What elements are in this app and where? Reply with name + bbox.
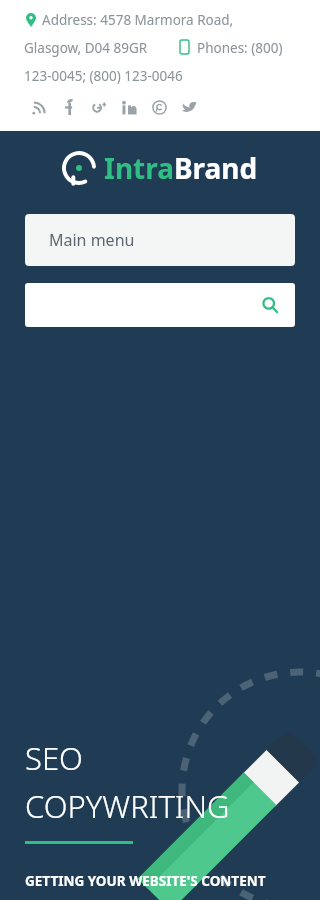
button[interactable]: Google Plus	[90, 98, 108, 116]
button[interactable]: Pinterest	[150, 98, 168, 116]
staticText: Address: 4578 Marmora Road,	[42, 11, 234, 29]
button[interactable]: Search	[259, 294, 281, 316]
button[interactable]: IntraBrand	[0, 149, 320, 187]
button[interactable]: RSS	[30, 98, 48, 116]
button[interactable]: Search	[25, 283, 295, 327]
button[interactable]: Twitter	[180, 98, 198, 116]
staticText: 123-0045; (800) 123-0046	[24, 67, 183, 85]
staticText: Phones: (800)	[197, 39, 283, 57]
staticText: IntraBrand	[104, 149, 258, 187]
button[interactable]: Main menu	[25, 214, 295, 266]
staticText: Glasgow, D04 89GR	[24, 39, 148, 57]
staticText: Main menu	[49, 229, 135, 251]
staticText: GETTING YOUR WEBSITE'S CONTENT	[25, 872, 266, 890]
button[interactable]: Facebook	[60, 98, 78, 116]
staticText: SEO	[25, 737, 83, 779]
button[interactable]: LinkedIn	[120, 98, 138, 116]
staticText: COPYWRITING	[25, 785, 230, 827]
